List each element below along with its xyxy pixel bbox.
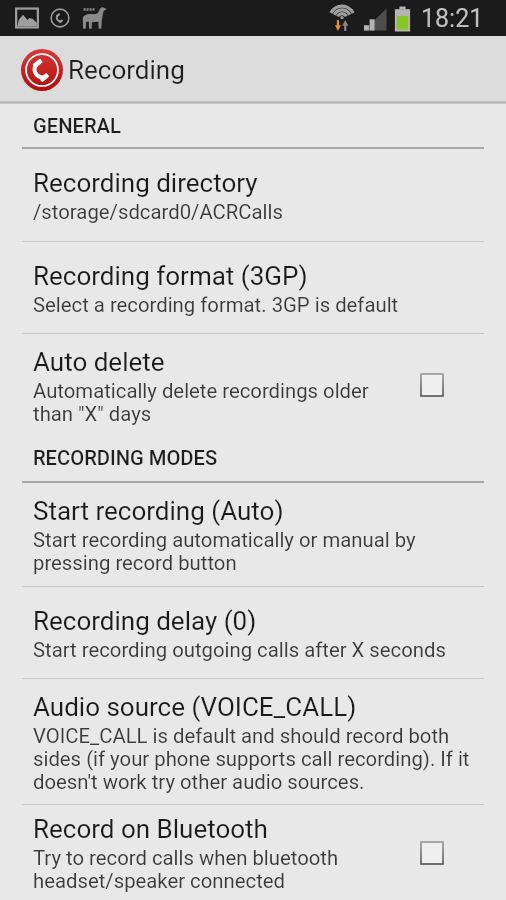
staticText: Try to record calls when bluetooth heads… [33,846,400,893]
button[interactable]: Toggle Record on Bluetooth [400,805,484,900]
staticText: Start recording automatically or manual … [33,528,484,575]
staticText: VOICE_CALL is default and should record … [33,724,484,794]
button[interactable]: Recording directory [0,149,506,241]
staticText: Recording [68,55,185,85]
staticText: Recording directory [33,168,258,198]
button[interactable]: Toggle Auto delete [400,334,484,436]
staticText: RECORDING MODES [33,446,218,470]
staticText: Start recording (Auto) [33,496,284,526]
staticText: Record on Bluetooth [33,814,268,844]
button[interactable]: Recording format (3GP) [0,242,506,333]
staticText: Select a recording format. 3GP is defaul… [33,293,399,317]
button[interactable]: Record on Bluetooth [0,805,506,900]
staticText: GENERAL [33,114,121,138]
staticText: Auto delete [33,347,165,377]
staticText: Audio source (VOICE_CALL) [33,692,357,722]
staticText: Start recording outgoing calls after X s… [33,638,446,662]
staticText: 18:21 [421,4,484,33]
button[interactable]: Audio source (VOICE_CALL) [0,679,506,804]
staticText: Automatically delete recordings older th… [33,379,400,426]
button[interactable]: Auto delete [0,334,506,436]
button[interactable]: Recording delay (0) [0,587,506,678]
staticText: /storage/sdcard0/ACRCalls [33,200,283,224]
staticText: Recording format (3GP) [33,261,308,291]
staticText: Recording delay (0) [33,606,257,636]
button[interactable]: Start recording (Auto) [0,483,506,586]
